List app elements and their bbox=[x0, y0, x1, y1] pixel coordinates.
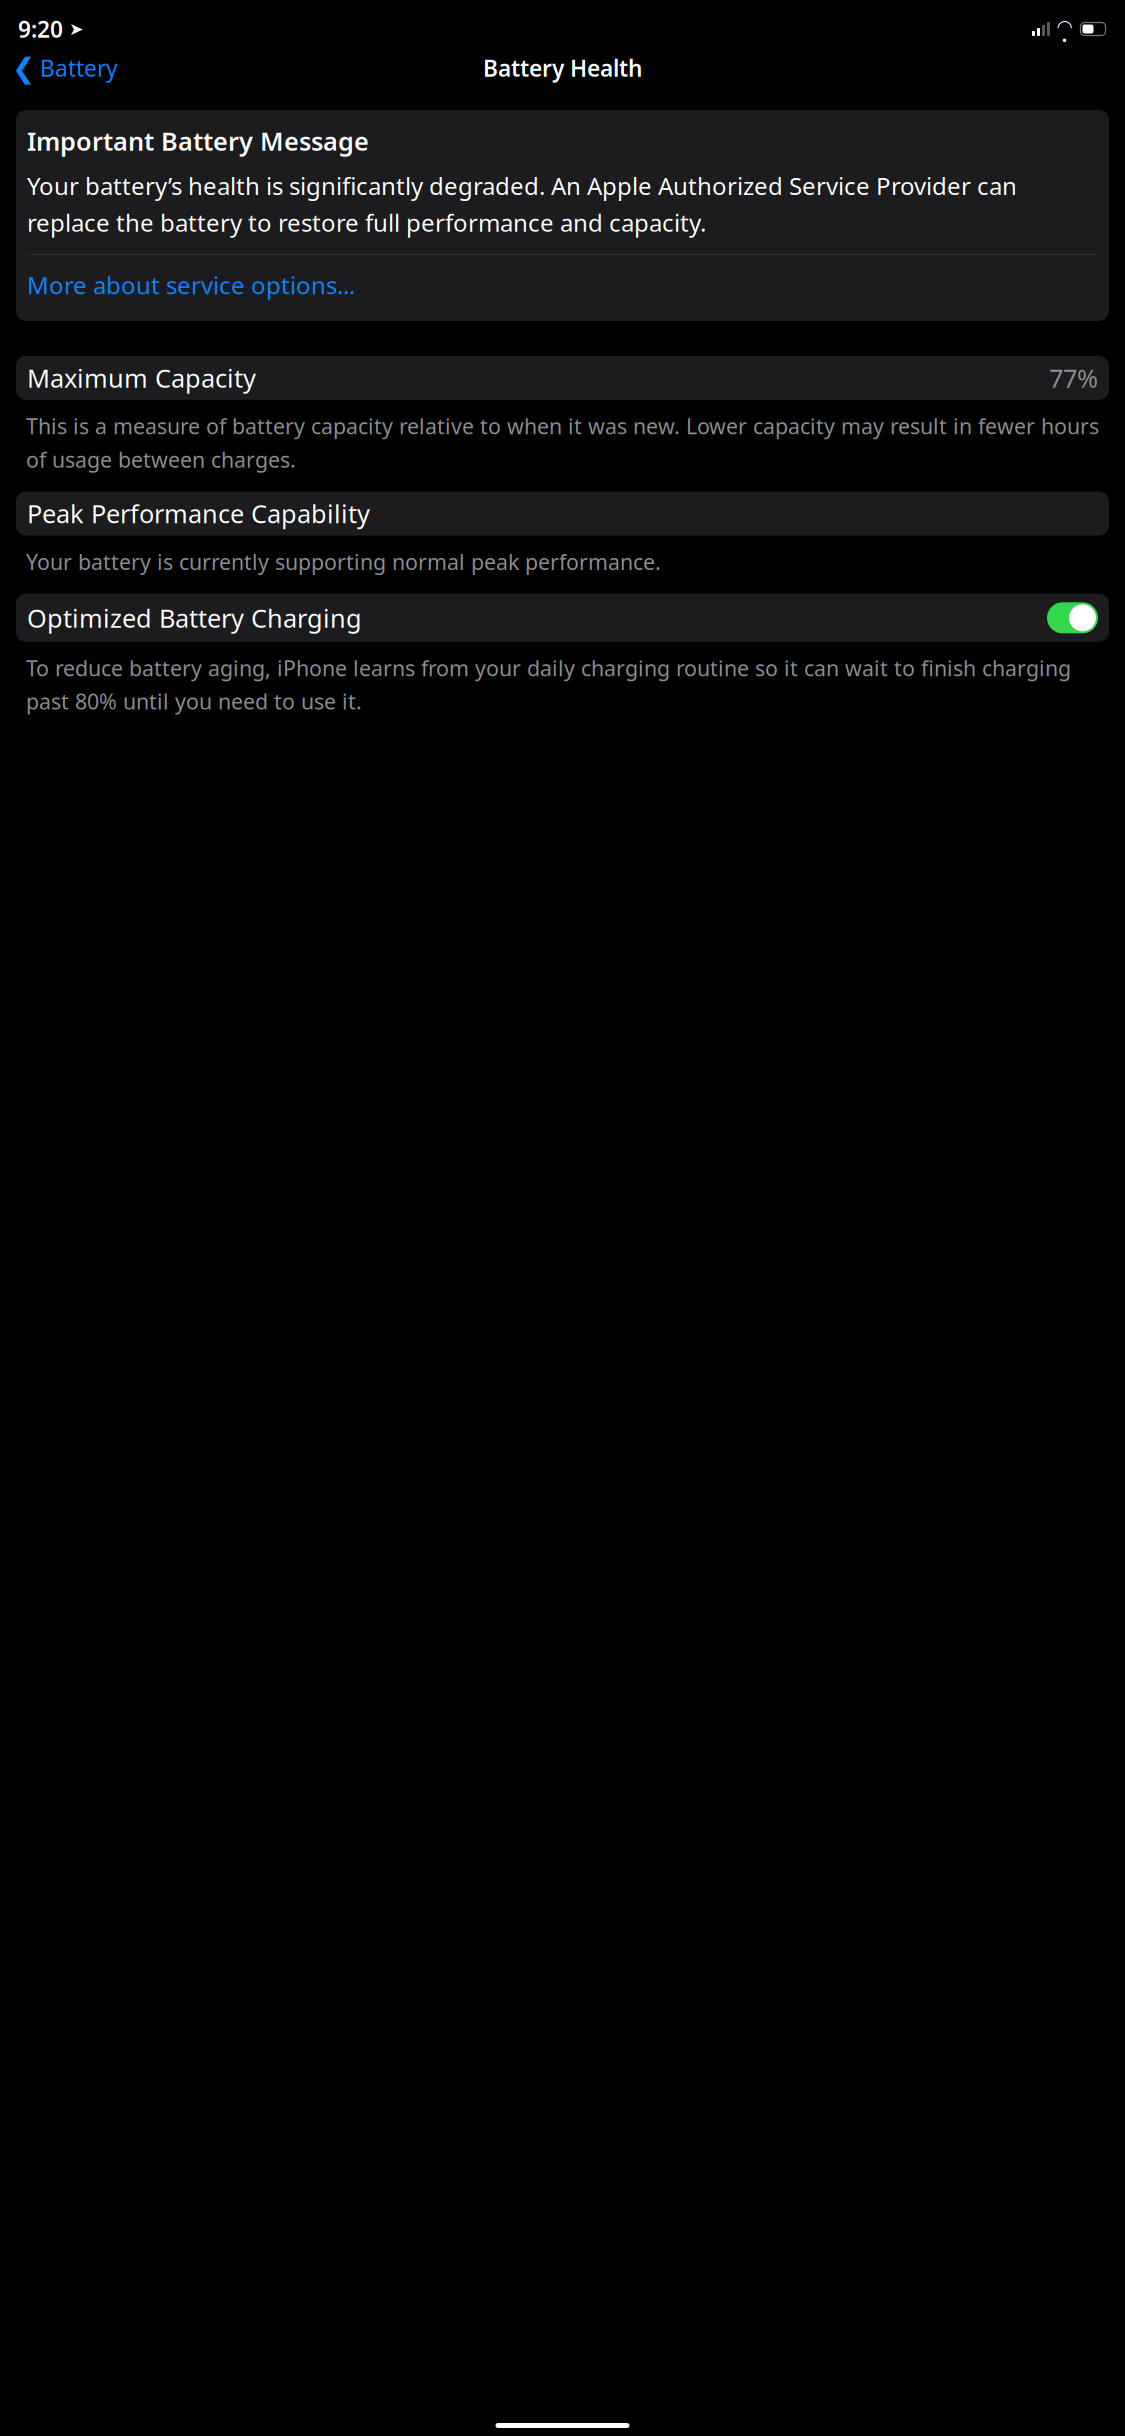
staticText: Maximum Capacity bbox=[27, 361, 256, 395]
staticText: ❮ bbox=[12, 52, 35, 84]
staticText: Optimized Battery Charging bbox=[27, 601, 362, 635]
staticText: To reduce battery aging, iPhone learns f… bbox=[26, 654, 1071, 715]
staticText: Important Battery Message bbox=[27, 124, 369, 158]
button[interactable]: More about service options... bbox=[27, 255, 1098, 315]
staticText: Battery Health bbox=[483, 53, 642, 83]
button[interactable]: Optimized Battery Charging toggle bbox=[1047, 602, 1098, 633]
staticText: Your battery’s health is significantly d… bbox=[27, 170, 1017, 238]
staticText: Peak Performance Capability bbox=[27, 497, 370, 530]
button[interactable]: ❮ bbox=[4, 46, 126, 90]
staticText: Your battery is currently supporting nor… bbox=[26, 547, 661, 576]
staticText: This is a measure of battery capacity re… bbox=[26, 412, 1099, 474]
staticText: Battery bbox=[40, 53, 118, 83]
staticText: 77% bbox=[1049, 361, 1098, 395]
staticText: ◠ bbox=[1057, 16, 1071, 37]
staticText: ➤ bbox=[69, 19, 84, 39]
staticText: 9:20 bbox=[18, 14, 63, 44]
staticText: More about service options... bbox=[27, 269, 355, 301]
